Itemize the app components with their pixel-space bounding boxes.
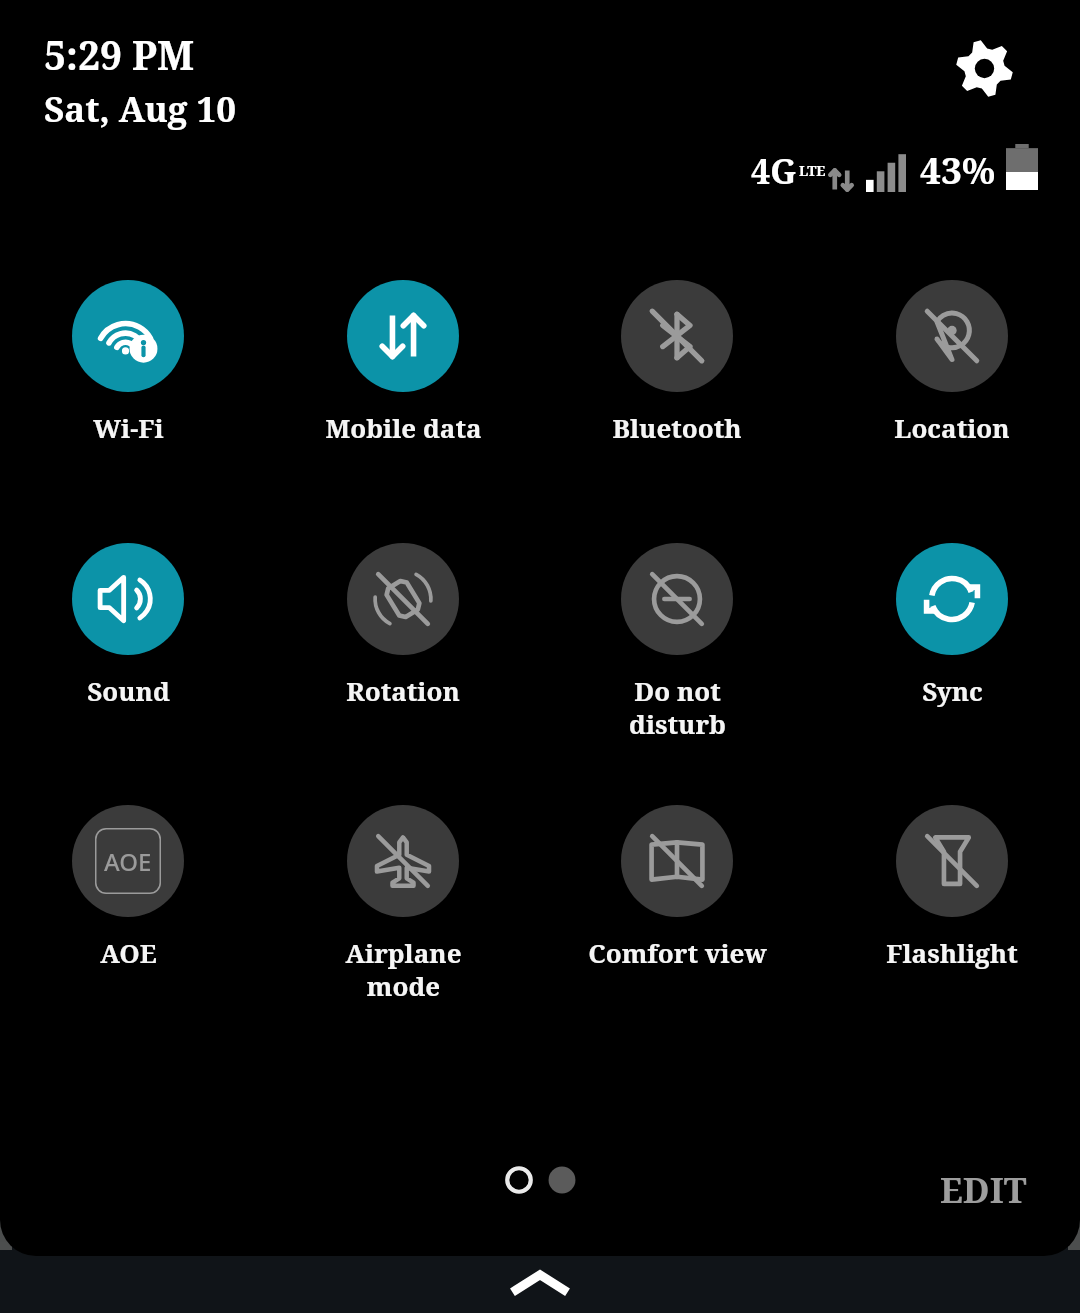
staticText: 5:29 PM [44, 28, 195, 81]
button[interactable]: Airplane mode [303, 805, 503, 1003]
button[interactable]: Settings [942, 26, 1026, 110]
button[interactable]: Wi-Fi [28, 280, 228, 445]
button[interactable]: Sound [28, 543, 228, 708]
button[interactable]: Sync [852, 543, 1052, 708]
staticText: Rotation [346, 673, 460, 708]
staticText: 4G [751, 148, 797, 194]
staticText: Bluetooth [612, 410, 742, 445]
button[interactable]: Bluetooth [577, 280, 777, 445]
button[interactable]: Comfort view [577, 805, 777, 970]
button[interactable]: Do not disturb [577, 543, 777, 741]
button[interactable]: Collapse quick settings [465, 1251, 615, 1313]
staticText: LTE [799, 161, 826, 180]
staticText: Sound [87, 673, 170, 708]
staticText: Location [894, 410, 1010, 445]
button[interactable]: Rotation [303, 543, 503, 708]
staticText: Wi-Fi [93, 410, 164, 445]
staticText: Mobile data [325, 410, 482, 445]
staticText: Airplane mode [345, 935, 462, 1003]
staticText: Sat, Aug 10 [44, 85, 237, 133]
button[interactable]: Flashlight [852, 805, 1052, 970]
button[interactable]: Location [852, 280, 1052, 445]
staticText: AOE [104, 845, 152, 878]
button[interactable]: AOE [28, 805, 228, 970]
button[interactable]: Mobile data [303, 280, 503, 445]
staticText: Comfort view [588, 935, 767, 970]
staticText: 43% [920, 144, 996, 194]
staticText: AOE [100, 935, 157, 970]
staticText: EDIT [940, 1166, 1027, 1214]
button[interactable]: EDIT [930, 1158, 1037, 1222]
staticText: Flashlight [886, 935, 1018, 970]
staticText: Do not disturb [629, 673, 726, 741]
staticText: Sync [922, 673, 983, 708]
